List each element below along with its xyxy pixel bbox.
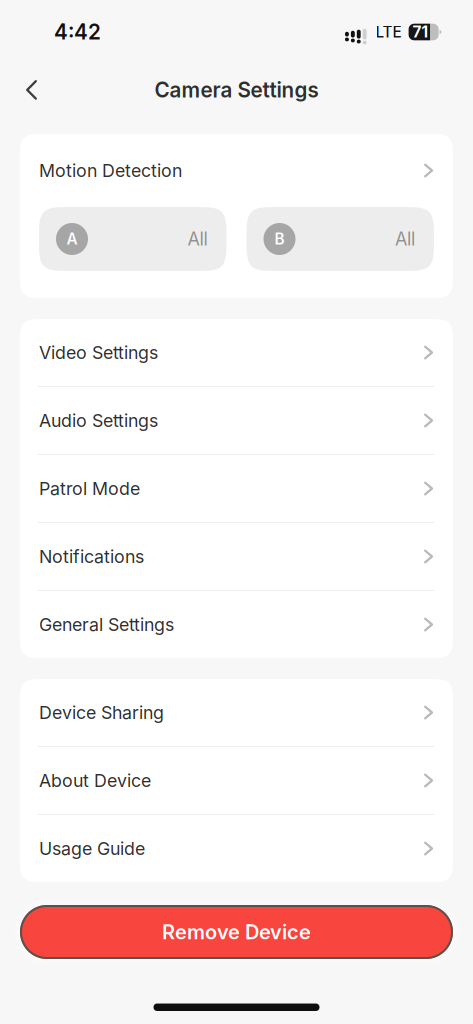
button[interactable]: Remove Device	[20, 905, 453, 959]
staticText: 4:42	[54, 19, 101, 44]
staticText: Audio Settings	[39, 410, 158, 431]
staticText: LTE	[376, 23, 402, 41]
button[interactable]: Usage Guide	[20, 815, 453, 882]
staticText: General Settings	[39, 614, 174, 635]
staticText: Remove Device	[162, 920, 311, 944]
button[interactable]: General Settings	[20, 591, 453, 658]
staticText: Device Sharing	[39, 702, 164, 723]
staticText: About Device	[39, 770, 151, 791]
button[interactable]: Video Settings	[20, 319, 453, 386]
staticText: A	[66, 230, 77, 248]
button[interactable]: Patrol Mode	[20, 455, 453, 522]
staticText: Notifications	[39, 546, 144, 567]
button[interactable]: Camera A motion detection: All	[39, 207, 226, 271]
staticText: All	[187, 228, 207, 250]
staticText: All	[395, 228, 415, 250]
button[interactable]: Back	[0, 60, 37, 120]
button[interactable]: Notifications	[20, 523, 453, 590]
staticText: Patrol Mode	[39, 478, 140, 499]
button[interactable]: Motion Detection	[20, 134, 453, 207]
staticText: Usage Guide	[39, 838, 145, 859]
button[interactable]: Camera B motion detection: All	[246, 207, 434, 271]
staticText: Video Settings	[39, 342, 158, 363]
staticText: Motion Detection	[39, 160, 182, 181]
button[interactable]: Audio Settings	[20, 387, 453, 454]
staticText: Camera Settings	[154, 77, 318, 102]
button[interactable]: Device Sharing	[20, 679, 453, 746]
button[interactable]: About Device	[20, 747, 453, 814]
staticText: B	[274, 230, 284, 248]
staticText: 71	[413, 23, 429, 41]
